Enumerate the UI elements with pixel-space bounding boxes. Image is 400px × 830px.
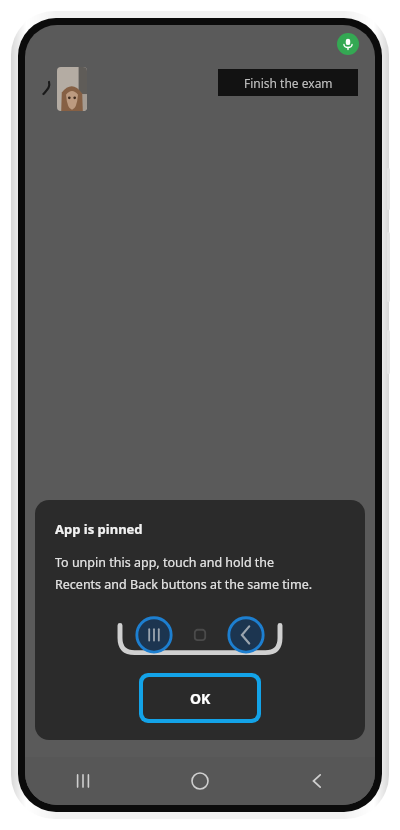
button[interactable]: Finish the exam <box>218 69 358 96</box>
staticText: OK <box>190 689 211 708</box>
button[interactable]: Recents <box>25 757 141 805</box>
button[interactable]: Back <box>258 757 375 805</box>
staticText: Recents and Back buttons at the same tim… <box>55 576 313 593</box>
button[interactable]: Self view <box>57 67 87 111</box>
staticText: App is pinned <box>55 520 143 538</box>
button[interactable]: Microphone active <box>337 33 359 55</box>
button[interactable]: Home <box>141 757 258 805</box>
button[interactable]: OK <box>139 673 261 723</box>
staticText: Finish the exam <box>244 75 333 91</box>
staticText: To unpin this app, touch and hold the <box>55 554 275 571</box>
